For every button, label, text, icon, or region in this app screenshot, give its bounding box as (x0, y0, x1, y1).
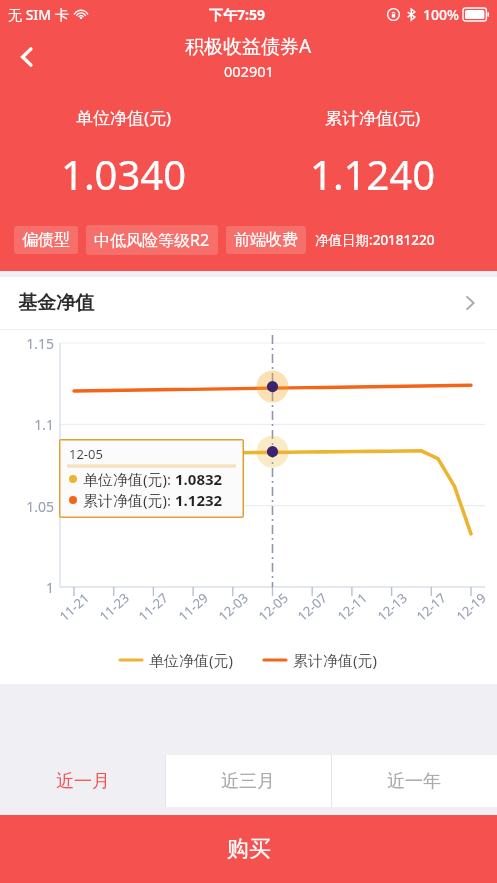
staticText: 12-05 (69, 445, 103, 463)
staticText: 12-05 (254, 589, 292, 625)
button[interactable]: 近一年 (331, 755, 497, 807)
staticText: 1.0340 (61, 147, 187, 201)
staticText: 1.1 (4, 415, 54, 434)
staticText: 12-19 (452, 589, 490, 625)
staticText: 近一月 (56, 770, 110, 793)
staticText: 净值日期:20181220 (315, 231, 435, 249)
staticText: 无 SIM 卡 (8, 5, 69, 24)
staticText: 12-17 (412, 589, 450, 625)
staticText: 累计净值(元) (293, 650, 378, 670)
staticText: 11-29 (174, 589, 212, 625)
staticText: 单位净值(元) (76, 106, 172, 129)
staticText: 购买 (227, 835, 271, 863)
staticText: 累计净值(元): (83, 490, 175, 510)
staticText: 单位净值(元): (83, 469, 175, 489)
staticText: 累计净值(元) (325, 106, 421, 129)
staticText: 积极收益债券A (185, 33, 312, 59)
staticText: 中低风险等级R2 (94, 229, 210, 251)
staticText: 下午7:59 (209, 5, 265, 24)
staticText: 1.05 (4, 497, 54, 516)
button[interactable]: 偏债型 (14, 226, 78, 254)
staticText: 单位净值(元) (149, 650, 234, 670)
staticText: 近一年 (387, 770, 441, 793)
staticText: 近三月 (221, 770, 275, 793)
staticText: 1.0832 (175, 469, 223, 489)
staticText: 偏债型 (22, 230, 70, 250)
staticText: 002901 (224, 61, 274, 81)
staticText: 1.1232 (175, 490, 223, 510)
staticText: 12-07 (293, 589, 331, 625)
staticText: 基金净值 (18, 291, 94, 315)
button[interactable]: 近一月 (0, 755, 165, 807)
staticText: 100% (423, 5, 459, 24)
staticText: 1.1240 (310, 147, 436, 201)
button[interactable]: 返回 (0, 30, 54, 84)
staticText: 前端收费 (234, 230, 298, 250)
staticText: 12-11 (333, 589, 371, 625)
staticText: 11-23 (95, 589, 133, 625)
staticText: 11-27 (134, 589, 172, 625)
staticText: 1.15 (4, 334, 54, 353)
button[interactable]: 中低风险等级R2 (86, 225, 218, 255)
staticText: 1 (4, 578, 54, 597)
button[interactable]: 购买 (0, 815, 497, 883)
button[interactable]: 前端收费 (226, 226, 306, 254)
button[interactable]: 近三月 (165, 755, 331, 807)
staticText: 11-21 (55, 589, 93, 625)
staticText: 12-03 (214, 589, 252, 625)
button[interactable]: 基金净值 (0, 277, 497, 329)
staticText: 12-13 (373, 589, 411, 625)
